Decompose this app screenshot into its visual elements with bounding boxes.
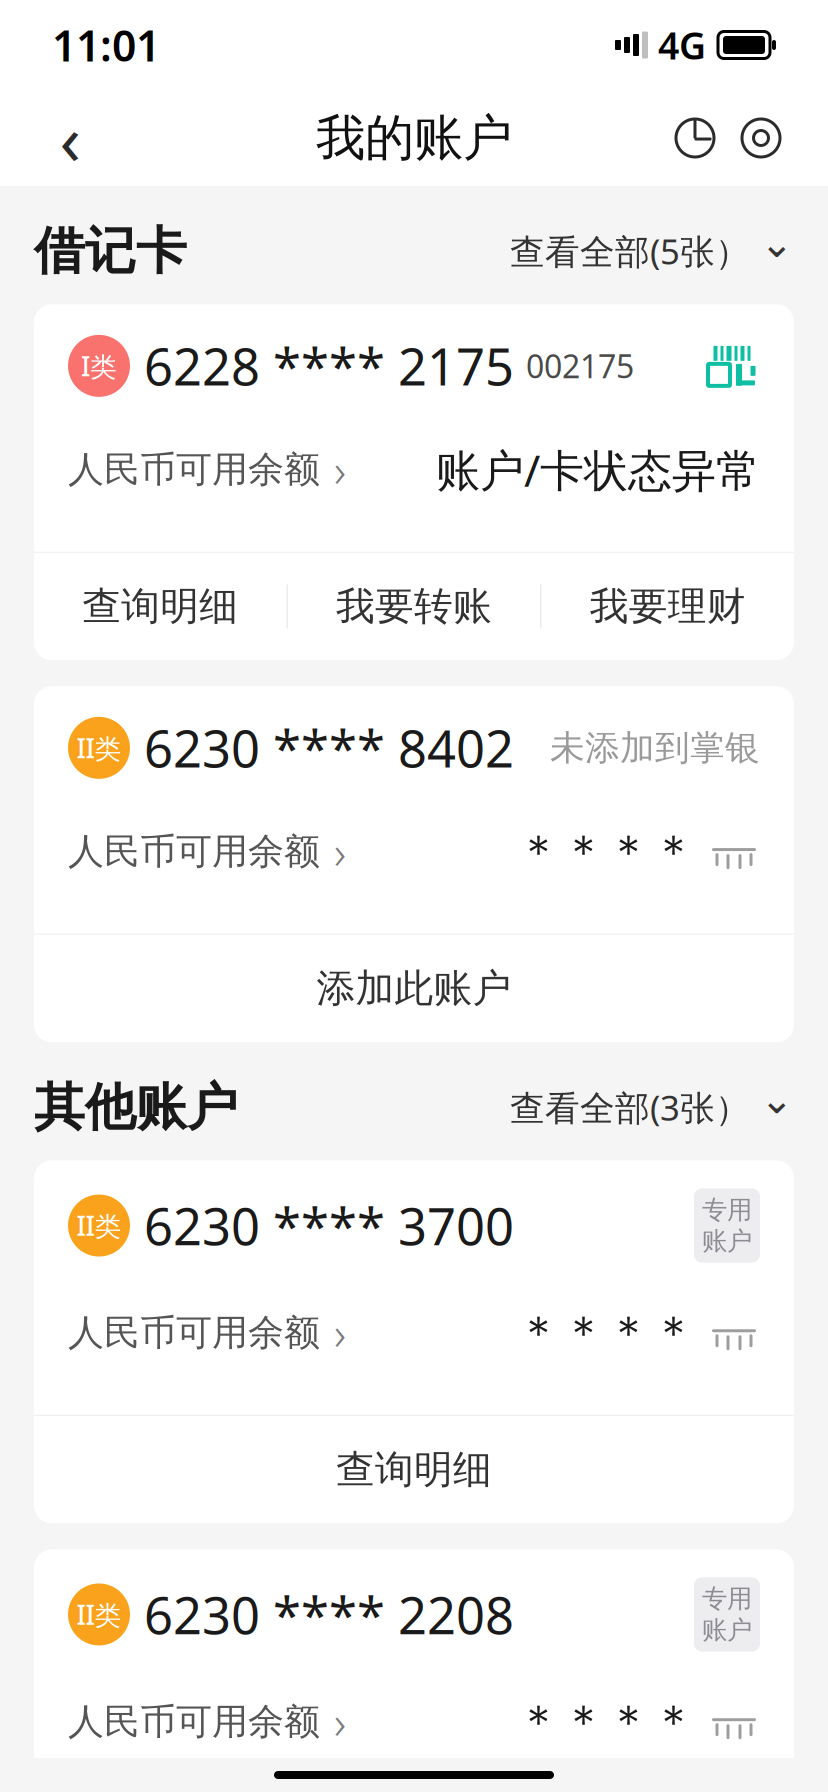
staticText: ＊＊＊＊ — [516, 1694, 696, 1749]
staticText: 专用 — [702, 1583, 752, 1614]
staticText: 人民币可用余额 — [68, 447, 320, 492]
staticText: 专用 — [702, 1194, 752, 1225]
button[interactable]: 查询明细 — [34, 1416, 794, 1523]
button[interactable]: 设置 — [728, 105, 794, 171]
staticText: 账户/卡状态异常 — [436, 440, 760, 499]
staticText: 我要转账 — [336, 583, 492, 630]
staticText: › — [334, 1692, 346, 1752]
button[interactable]: 查看全部(3张） — [510, 1078, 794, 1136]
staticText: 我的账户 — [316, 108, 512, 168]
button[interactable]: 我要理财 — [541, 553, 794, 660]
button[interactable]: 查看全部(5张） — [510, 222, 794, 280]
staticText: ＊＊＊＊ — [516, 1305, 696, 1361]
staticText: 添加此账户 — [316, 965, 511, 1012]
staticText: 我要理财 — [590, 583, 746, 630]
staticText: 查看全部(3张） — [510, 1084, 750, 1130]
staticText: 人民币可用余额 — [68, 829, 320, 874]
staticText: ‹ — [59, 92, 80, 184]
staticText: 账户 — [702, 1225, 752, 1257]
staticText: I类 — [81, 348, 117, 384]
staticText: 11:01 — [52, 17, 160, 73]
staticText: 账户 — [702, 1614, 752, 1646]
button[interactable]: 显示余额 — [708, 1316, 760, 1350]
staticText: 查看全部(5张） — [510, 228, 750, 274]
button[interactable]: 显示余额 — [708, 1705, 760, 1739]
staticText: II类 — [76, 1208, 121, 1243]
button[interactable]: 我要转账 — [288, 553, 540, 660]
staticText: 借记卡 — [34, 220, 187, 282]
button[interactable]: 人民币可用余额 — [68, 1303, 346, 1363]
button[interactable]: 返回 — [34, 102, 106, 174]
staticText: 002175 — [526, 345, 634, 387]
staticText: › — [334, 821, 346, 882]
staticText: ⌄ — [760, 1077, 794, 1122]
staticText: 4G — [658, 20, 706, 70]
button[interactable]: 显示余额 — [708, 835, 760, 869]
staticText: 人民币可用余额 — [68, 1700, 320, 1744]
button[interactable]: 付款码 — [704, 343, 760, 389]
button[interactable]: 人民币可用余额 — [68, 1692, 346, 1752]
staticText: 人民币可用余额 — [68, 1311, 320, 1355]
staticText: ⌄ — [760, 220, 794, 266]
staticText: 6230 **** 8402 — [144, 714, 514, 781]
staticText: › — [334, 1303, 346, 1363]
button[interactable]: 查询明细 — [34, 553, 287, 660]
staticText: 查询明细 — [82, 583, 238, 630]
button[interactable]: 添加此账户 — [34, 935, 794, 1042]
button[interactable]: 人民币可用余额 — [68, 439, 346, 500]
staticText: II类 — [76, 1597, 121, 1632]
staticText: 6230 **** 2208 — [144, 1581, 514, 1648]
staticText: 未添加到掌银 — [550, 727, 760, 769]
staticText: ＊＊＊＊ — [516, 824, 696, 879]
button[interactable]: 资产分析 — [662, 105, 728, 171]
staticText: 6228 **** 2175 — [144, 332, 514, 399]
staticText: II类 — [76, 730, 121, 766]
button[interactable]: 人民币可用余额 — [68, 821, 346, 882]
staticText: › — [334, 439, 346, 500]
staticText: 6230 **** 3700 — [144, 1192, 514, 1259]
staticText: 其他账户 — [34, 1076, 238, 1138]
staticText: 查询明细 — [336, 1446, 492, 1493]
